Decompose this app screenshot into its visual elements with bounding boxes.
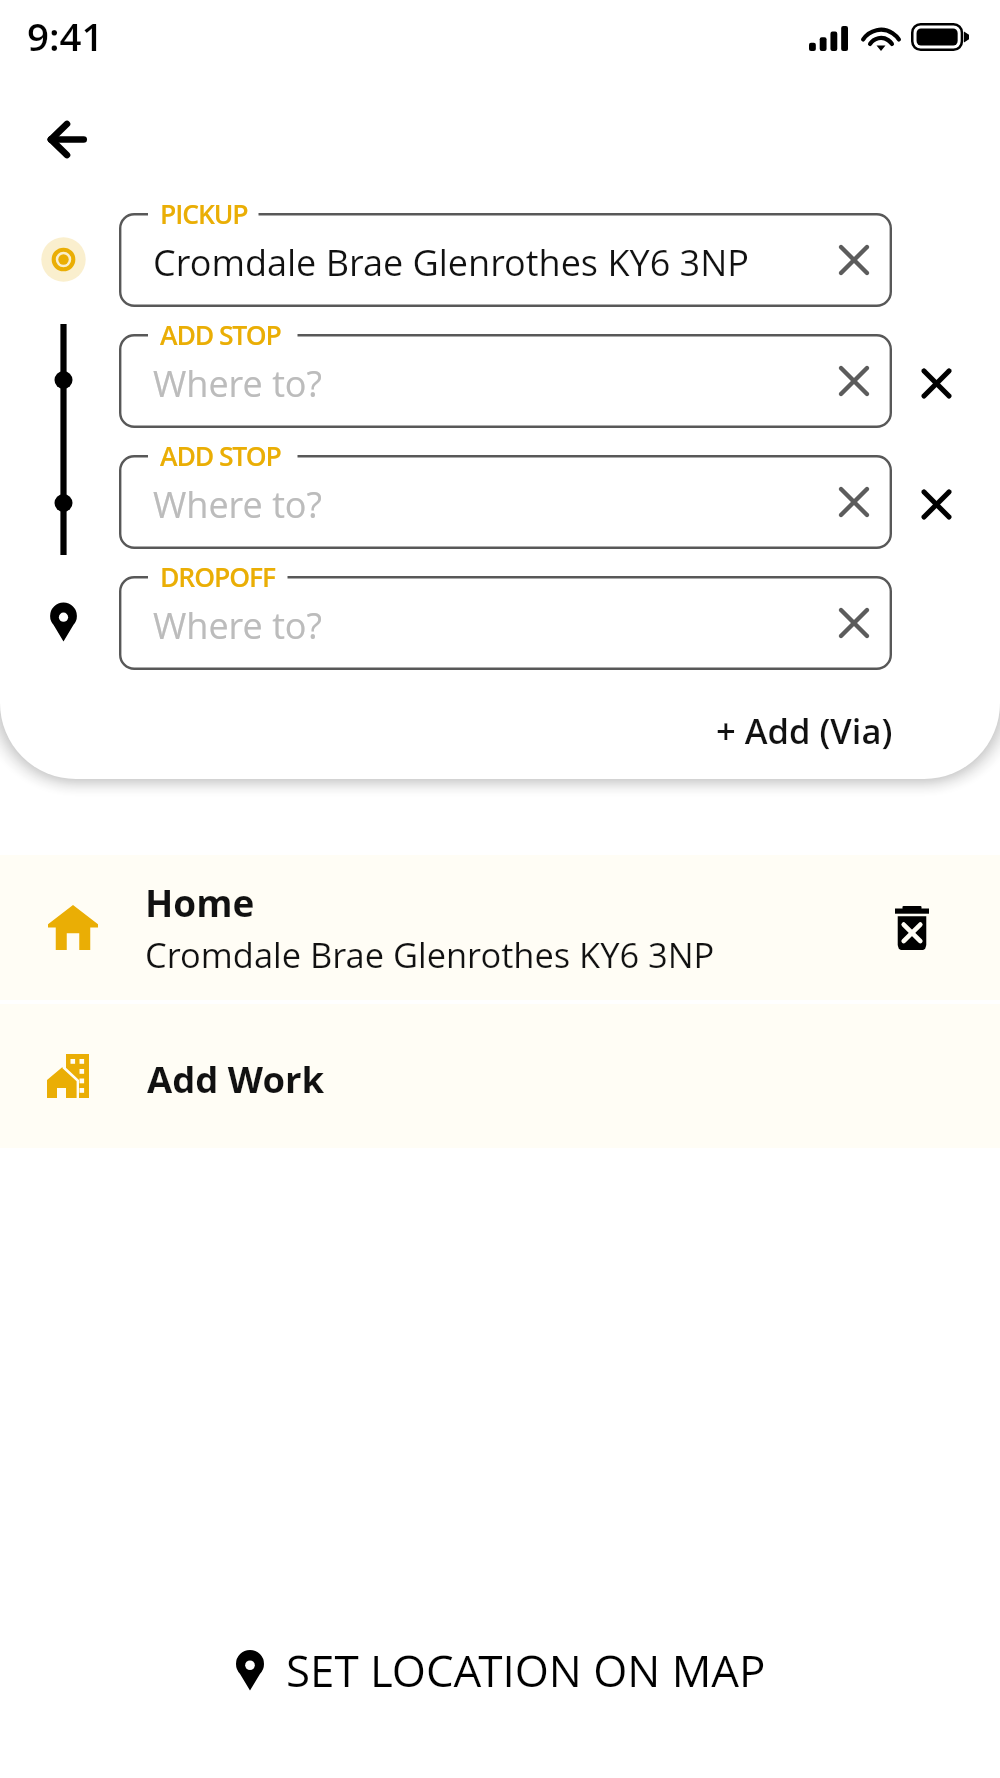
staticText: Home <box>145 877 255 927</box>
button[interactable]: + Add (Via) <box>700 697 909 764</box>
button[interactable]: Remove stop <box>904 472 969 537</box>
button[interactable]: Add Work <box>0 1004 1000 1148</box>
staticText: Cromdale Brae Glenrothes KY6 3NP <box>145 931 715 978</box>
button[interactable]: DROPOFF <box>119 576 892 670</box>
button[interactable]: Remove stop <box>904 351 969 416</box>
staticText: + Add (Via) <box>716 707 893 754</box>
button[interactable]: Clear ADD STOP <box>822 349 886 413</box>
staticText: Where to? <box>153 359 323 408</box>
staticText: Where to? <box>153 480 323 529</box>
button[interactable]: Clear PICKUP <box>822 228 886 292</box>
staticText: DROPOFF <box>160 559 275 595</box>
button[interactable]: ADD STOP <box>119 334 892 428</box>
button[interactable]: Clear ADD STOP <box>822 470 886 534</box>
staticText: ADD STOP <box>160 317 281 353</box>
staticText: PICKUP <box>160 196 248 232</box>
button[interactable]: Clear DROPOFF <box>822 591 886 655</box>
button[interactable]: ADD STOP <box>119 455 892 549</box>
staticText: ADD STOP <box>160 438 281 474</box>
staticText: Where to? <box>153 601 323 650</box>
button[interactable]: SET LOCATION ON MAP <box>0 1618 1000 1718</box>
staticText: 9:41 <box>27 10 104 62</box>
staticText: Add Work <box>147 1054 325 1104</box>
button[interactable]: Back <box>29 101 105 177</box>
staticText: Cromdale Brae Glenrothes KY6 3NP <box>153 238 749 287</box>
staticText: SET LOCATION ON MAP <box>286 1640 766 1700</box>
button[interactable]: Delete Home <box>879 895 945 961</box>
button[interactable]: Home <box>0 855 1000 1000</box>
button[interactable]: PICKUP <box>119 213 892 307</box>
